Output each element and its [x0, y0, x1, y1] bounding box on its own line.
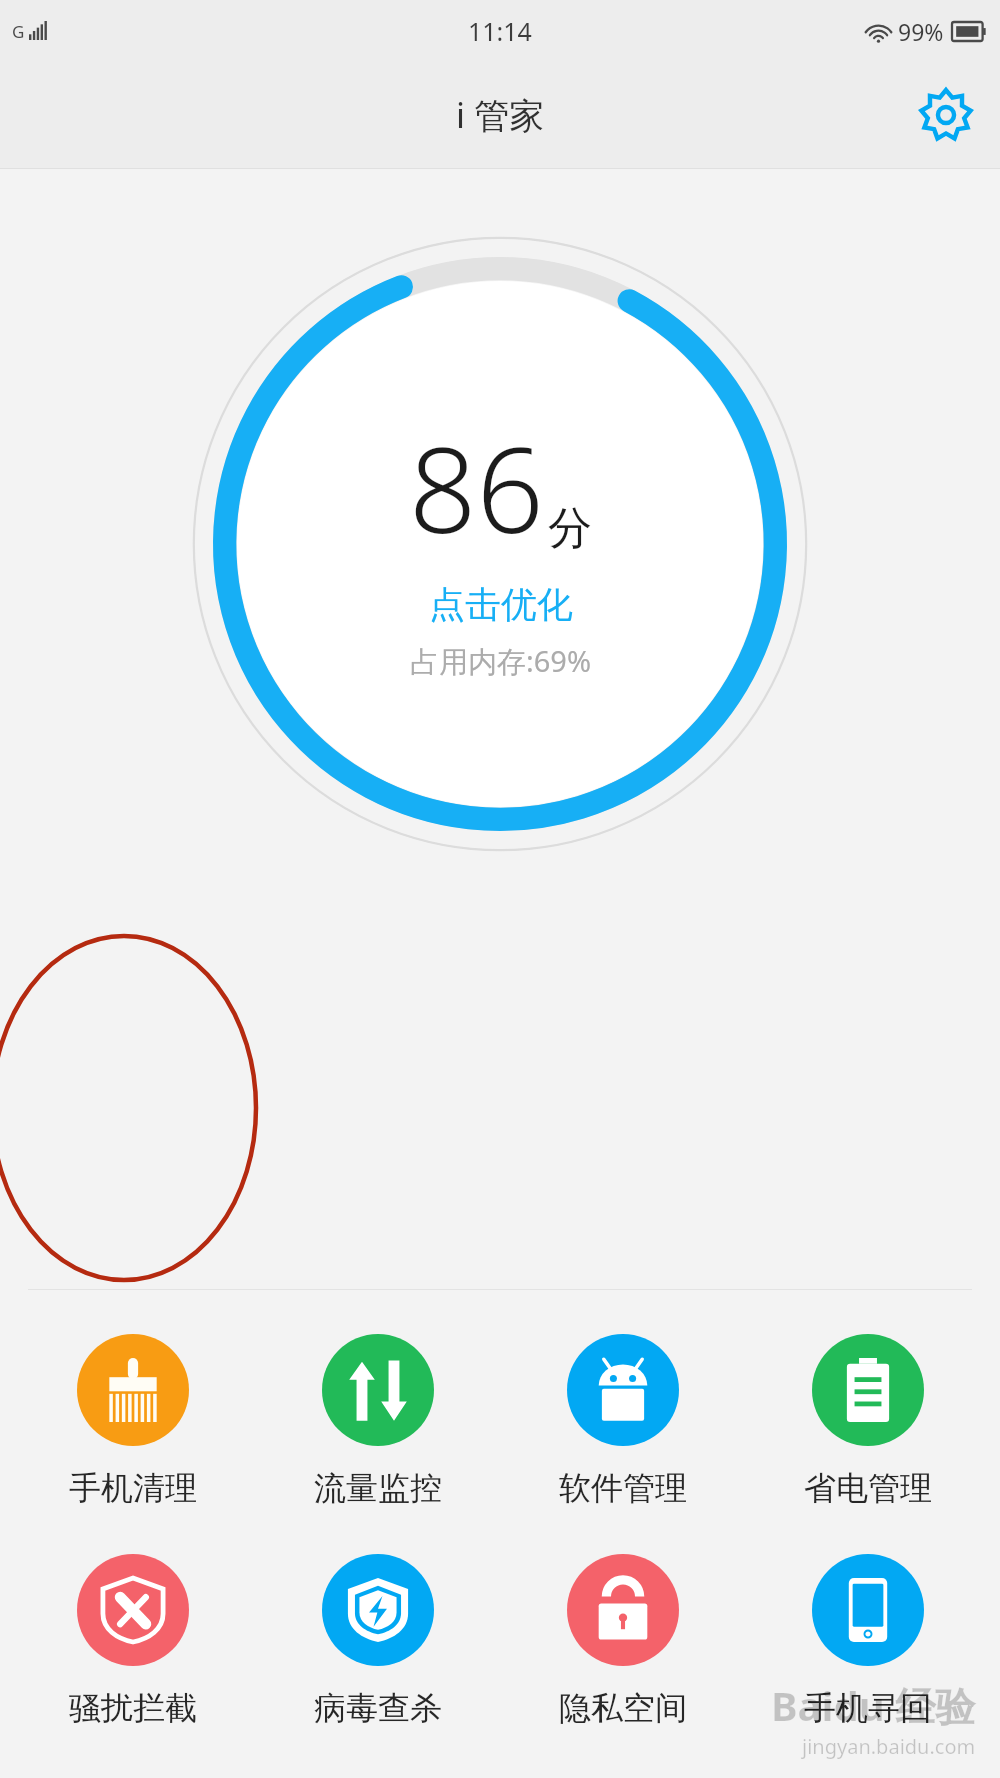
staticText: 手机清理 — [69, 1468, 197, 1508]
button[interactable]: 手机清理 — [10, 1330, 255, 1512]
staticText: 手机寻回 — [804, 1688, 932, 1728]
staticText: 骚扰拦截 — [69, 1688, 197, 1728]
staticText: 86 — [409, 407, 544, 568]
button[interactable]: 手机寻回 — [745, 1550, 990, 1732]
staticText: 隐私空间 — [559, 1688, 687, 1728]
staticText: 点击优化 — [429, 582, 573, 627]
button[interactable]: 86 — [409, 407, 592, 681]
button[interactable]: 骚扰拦截 — [10, 1550, 255, 1732]
staticText: 占用内存:69% — [410, 641, 592, 681]
staticText: 分 — [548, 501, 592, 556]
staticText: 11:14 — [468, 14, 532, 48]
staticText: Baidu 经验 — [771, 1678, 976, 1733]
staticText: 软件管理 — [559, 1468, 687, 1508]
staticText: 省电管理 — [804, 1468, 932, 1508]
button[interactable]: 省电管理 — [745, 1330, 990, 1512]
staticText: i 管家 — [456, 91, 545, 139]
staticText: jingyan.baidu.com — [802, 1733, 976, 1760]
staticText: 99% — [898, 16, 944, 47]
button[interactable]: 隐私空间 — [500, 1550, 745, 1732]
staticText: 流量监控 — [314, 1468, 442, 1508]
button[interactable]: Settings — [914, 83, 978, 147]
button[interactable]: 病毒查杀 — [255, 1550, 500, 1732]
button[interactable]: 软件管理 — [500, 1330, 745, 1512]
button[interactable]: 流量监控 — [255, 1330, 500, 1512]
staticText: 病毒查杀 — [314, 1688, 442, 1728]
staticText: G — [12, 20, 25, 43]
